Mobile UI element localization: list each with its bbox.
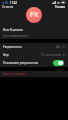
- staticText: Уведомления: [3, 45, 22, 49]
- button[interactable]: Уведомления: [3, 43, 65, 51]
- staticText: Удалить контакт: [3, 72, 26, 76]
- staticText: 11:24: [10, 1, 17, 5]
- staticText: По умолчанию: [41, 53, 62, 57]
- staticText: Имя Фамилия: [3, 28, 23, 32]
- button[interactable]: Показывать уведомления: [3, 59, 64, 67]
- button[interactable]: Фото профиля: [26, 7, 42, 23]
- button[interactable]: Отмена: [1, 5, 15, 9]
- staticText: VK: [5, 1, 9, 4]
- staticText: Звук: [3, 53, 10, 57]
- button[interactable]: Имя Фамилия: [3, 28, 23, 32]
- staticText: PK: [30, 10, 39, 20]
- staticText: Отмена: [2, 5, 14, 9]
- button[interactable]: Показывать уведомления: [53, 60, 64, 66]
- button[interactable]: Готово: [54, 5, 67, 9]
- button[interactable]: Звук: [3, 51, 65, 59]
- staticText: Показывать уведомления: [3, 61, 39, 65]
- staticText: Ещё информация: [3, 34, 28, 38]
- staticText: Вкл.: [56, 45, 62, 49]
- staticText: Готово: [55, 5, 66, 9]
- button[interactable]: Удалить контакт: [3, 71, 65, 77]
